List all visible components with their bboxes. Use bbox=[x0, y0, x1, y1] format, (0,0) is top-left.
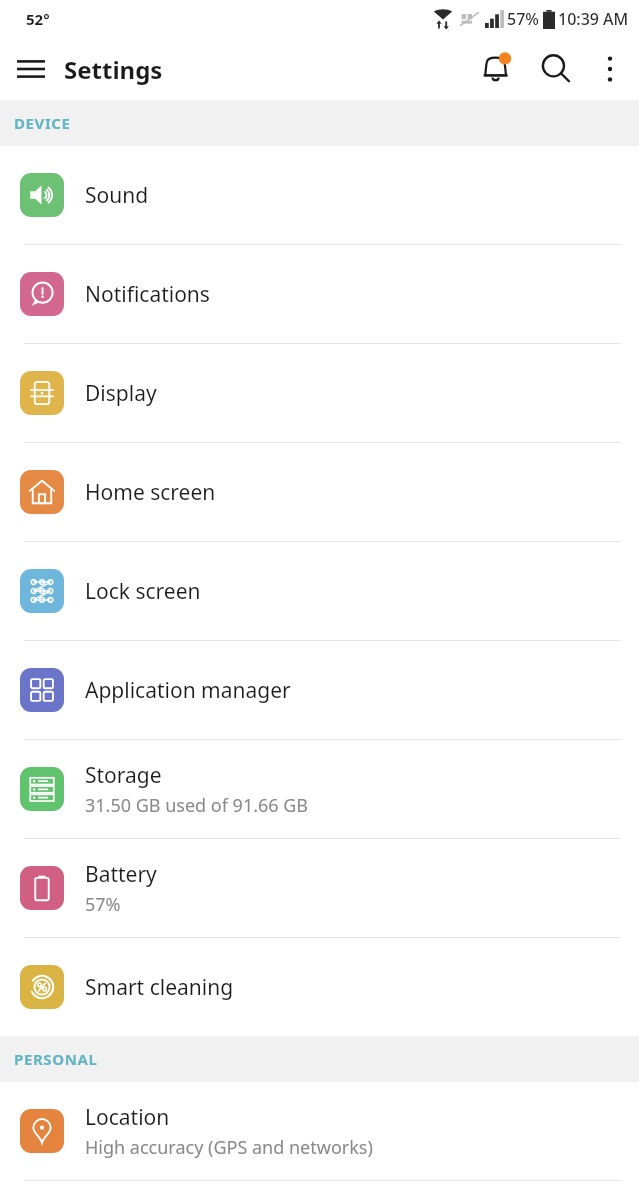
button[interactable]: Smart cleaning bbox=[0, 938, 639, 1036]
staticText: Display bbox=[85, 379, 157, 408]
button[interactable]: Notifications, 5 new bbox=[469, 40, 527, 98]
staticText: Location bbox=[85, 1103, 170, 1132]
staticText: 57% bbox=[507, 8, 539, 30]
button[interactable]: Battery bbox=[0, 839, 639, 937]
button[interactable]: More options bbox=[585, 44, 635, 94]
staticText: Application manager bbox=[85, 676, 291, 705]
button[interactable]: Open navigation menu bbox=[0, 38, 62, 100]
button[interactable]: Search bbox=[527, 40, 585, 98]
staticText: PERSONAL bbox=[14, 1049, 98, 1069]
button[interactable]: Sound bbox=[0, 146, 639, 244]
staticText: 52° bbox=[26, 9, 50, 29]
button[interactable]: Storage bbox=[0, 740, 639, 838]
staticText: 31.50 GB used of 91.66 GB bbox=[85, 793, 309, 818]
staticText: Storage bbox=[85, 761, 162, 790]
button[interactable]: Lock screen bbox=[0, 542, 639, 640]
staticText: 57% bbox=[85, 892, 121, 917]
staticText: Smart cleaning bbox=[85, 973, 234, 1002]
staticText: DEVICE bbox=[14, 113, 71, 133]
button[interactable]: Location bbox=[0, 1082, 639, 1180]
staticText: Sound bbox=[85, 181, 149, 210]
staticText: Battery bbox=[85, 860, 157, 889]
button[interactable]: Display bbox=[0, 344, 639, 442]
staticText: Lock screen bbox=[85, 577, 201, 606]
staticText: 10:39 AM bbox=[558, 8, 629, 30]
staticText: Notifications bbox=[85, 280, 210, 309]
staticText: Home screen bbox=[85, 478, 216, 507]
staticText: High accuracy (GPS and networks) bbox=[85, 1135, 373, 1160]
button[interactable]: Home screen bbox=[0, 443, 639, 541]
button[interactable]: Application manager bbox=[0, 641, 639, 739]
button[interactable]: Notifications bbox=[0, 245, 639, 343]
staticText: Settings bbox=[64, 53, 163, 86]
